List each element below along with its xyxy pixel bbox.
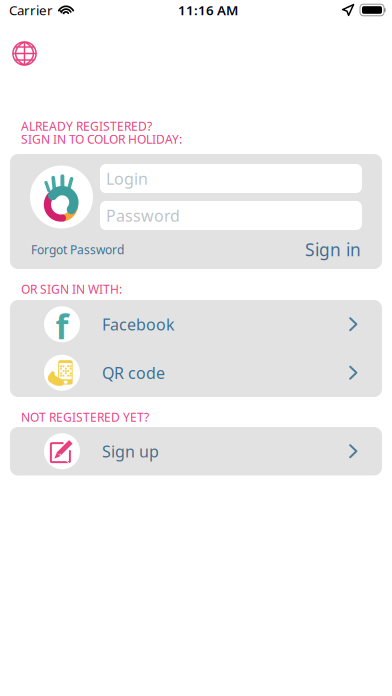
staticText: Sign up: [102, 441, 159, 462]
staticText: Login: [106, 168, 148, 189]
button[interactable]: Sign in: [305, 238, 361, 261]
staticText: Forgot Password: [31, 241, 124, 257]
button[interactable]: Sign up: [10, 427, 382, 475]
staticText: f: [55, 304, 68, 349]
staticText: ALREADY REGISTERED?: [21, 118, 152, 134]
staticText: Sign in: [305, 238, 361, 261]
staticText: SIGN IN TO COLOR HOLIDAY:: [21, 131, 182, 147]
staticText: NOT REGISTERED YET?: [21, 409, 149, 425]
staticText: 11:16 AM: [178, 1, 238, 19]
staticText: QR code: [102, 362, 165, 383]
button[interactable]: QR code: [10, 348, 382, 397]
staticText: OR SIGN IN WITH:: [21, 281, 122, 297]
staticText: Password: [106, 205, 180, 226]
button[interactable]: Change language: [12, 41, 37, 66]
button[interactable]: Forgot Password: [31, 241, 124, 257]
staticText: Carrier: [9, 1, 53, 19]
staticText: Facebook: [102, 314, 175, 335]
button[interactable]: f: [10, 300, 382, 348]
